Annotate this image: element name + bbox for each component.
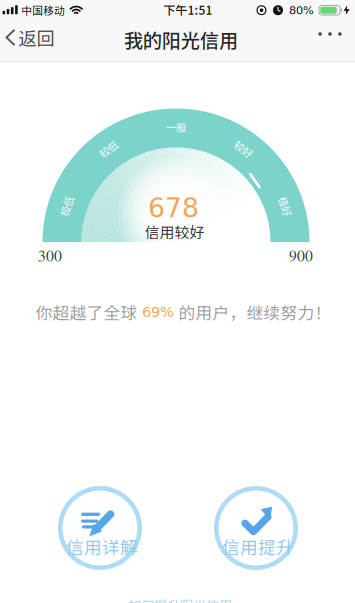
staticText: 80%	[289, 4, 314, 17]
staticText: 信用详解	[66, 534, 138, 559]
staticText: 信用较好	[144, 221, 204, 242]
staticText: 较好	[234, 141, 254, 156]
staticText: 返回	[18, 24, 54, 51]
button[interactable]: 信用详解	[58, 486, 142, 570]
staticText: 300	[38, 245, 62, 266]
staticText: 678	[148, 192, 199, 223]
staticText: 中国移动	[21, 2, 65, 18]
staticText: 一般	[166, 119, 186, 135]
button[interactable]: 返回	[0, 16, 59, 59]
staticText: 的用户，继续努力！	[178, 300, 331, 324]
staticText: 900	[289, 245, 313, 266]
button[interactable]: 更多	[308, 22, 352, 46]
staticText: 极低	[57, 199, 77, 214]
staticText: 较低	[98, 141, 118, 156]
staticText: 你超越了全球	[35, 300, 137, 324]
staticText: 信用提升	[222, 534, 294, 559]
button[interactable]: 如何提升阳光信用	[128, 595, 232, 603]
staticText: 69%	[142, 303, 174, 321]
staticText: 我的阳光信用	[124, 26, 238, 53]
staticText: 极好	[275, 199, 295, 214]
button[interactable]: 信用提升	[214, 486, 298, 570]
staticText: 下午1:51	[163, 1, 212, 18]
staticText: 如何提升阳光信用	[128, 595, 232, 603]
